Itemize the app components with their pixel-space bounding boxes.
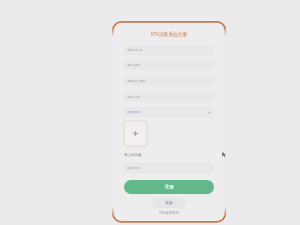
- staticText: 已有账号登录: [113, 211, 225, 218]
- button[interactable]: 请输入内容: [124, 163, 214, 173]
- staticText: 请输入手机: [127, 95, 140, 98]
- staticText: 请确认输入密码: [127, 79, 146, 82]
- button[interactable]: 请输入手机: [124, 92, 214, 102]
- staticText: 请选择性别: [127, 110, 140, 113]
- staticText: 注册: [165, 184, 174, 190]
- button[interactable]: 请输入用户名: [124, 45, 214, 55]
- button[interactable]: 上传头像: [124, 121, 147, 146]
- staticText: 登录: [165, 200, 174, 205]
- button[interactable]: 请确认输入密码: [124, 76, 214, 86]
- staticText: 请上传头像: [124, 153, 204, 160]
- button[interactable]: 请输入密码: [124, 60, 214, 70]
- staticText: 请输入密码: [127, 63, 140, 66]
- staticText: 请输入用户名: [127, 48, 143, 51]
- button[interactable]: 请选择性别: [124, 107, 214, 117]
- staticText: 请输入内容: [127, 166, 140, 169]
- button[interactable]: 登录: [152, 198, 186, 208]
- staticText: KTV点歌系统注册: [113, 31, 225, 38]
- button[interactable]: 注册: [124, 180, 214, 194]
